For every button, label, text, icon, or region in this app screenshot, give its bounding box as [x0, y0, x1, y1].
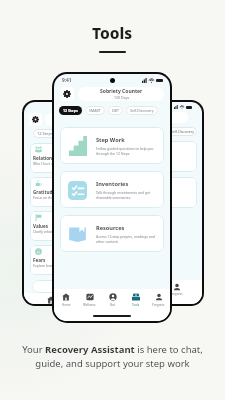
- button[interactable]: Resources: [60, 215, 164, 252]
- staticText: Sobriety Counter: [100, 88, 143, 95]
- staticText: Resources: [96, 224, 125, 232]
- button[interactable]: DBT: [108, 106, 123, 115]
- staticText: 120 Days: [114, 95, 130, 100]
- staticText: Access 12-step prayers, readings and: [96, 234, 155, 239]
- button[interactable]: Relationships: [30, 143, 76, 173]
- staticText: Explore fear t: [33, 263, 55, 268]
- staticText: Clarify what m: [33, 229, 56, 234]
- staticText: through the 12 Steps.: [96, 151, 131, 156]
- button[interactable]: Step Work: [60, 127, 164, 164]
- button[interactable]: Settings: [60, 87, 74, 101]
- staticText: 12 Steps: [63, 108, 78, 113]
- staticText: y cognitive: [154, 154, 173, 159]
- button[interactable]: [45, 113, 76, 126]
- button[interactable]: [150, 112, 188, 123]
- button[interactable]: Wellness: [78, 291, 101, 309]
- staticText: Your Recovery Assistant is here to chat,…: [14, 343, 211, 370]
- staticText: Bot: [110, 303, 115, 307]
- staticText: Self-Discovery: [171, 129, 194, 134]
- staticText: other content.: [96, 239, 119, 244]
- staticText: 9:41: [61, 105, 70, 111]
- staticText: Progress: [170, 292, 183, 296]
- staticText: DBT: [112, 108, 119, 113]
- staticText: Progress: [152, 303, 165, 307]
- staticText: Home: [62, 303, 71, 307]
- button[interactable]: 12 Steps: [33, 129, 57, 138]
- button[interactable]: Self-Discovery: [168, 127, 197, 136]
- staticText: Wellness: [83, 303, 96, 307]
- button[interactable]: Self-Discovery: [126, 106, 158, 115]
- button[interactable]: Inventories: [60, 171, 164, 208]
- staticText: 12 Steps: [37, 131, 53, 136]
- staticText: Inventories: [96, 180, 129, 188]
- button[interactable]: Home: [54, 291, 78, 309]
- button[interactable]: 12 Steps: [59, 106, 82, 115]
- button[interactable]: Tools: [124, 291, 147, 309]
- staticText: shareable summaries.: [96, 195, 132, 200]
- button[interactable]: Sobriety Counter: [78, 87, 164, 101]
- button[interactable]: Bot: [101, 291, 124, 309]
- staticText: Fears: [33, 257, 46, 263]
- staticText: Values: [33, 223, 49, 229]
- button[interactable]: y cognitive: [150, 141, 197, 172]
- staticText: Tools: [92, 22, 133, 43]
- staticText: Focus on the: [33, 195, 54, 200]
- staticText: Step Work: [96, 136, 125, 144]
- staticText: Tools: [132, 303, 140, 307]
- staticText: r therapy: [154, 190, 170, 195]
- button[interactable]: r therapy: [150, 177, 197, 208]
- staticText: Gratitude: [33, 189, 56, 195]
- button[interactable]: Values: [30, 211, 76, 241]
- button[interactable]: Progress: [170, 283, 183, 296]
- staticText: Who I hurt +: [33, 161, 53, 166]
- staticText: Relationships: [33, 155, 64, 161]
- staticText: 9:41: [62, 77, 72, 84]
- button[interactable]: Gratitude: [30, 177, 76, 207]
- button[interactable]: SMART: [85, 106, 105, 115]
- staticText: Self-Discovery: [130, 108, 154, 113]
- button[interactable]: Settings: [29, 113, 42, 126]
- staticText: SMART: [89, 108, 101, 113]
- staticText: My S: [61, 283, 73, 290]
- button[interactable]: My S: [32, 280, 76, 293]
- staticText: Talk through resentments and get: [96, 190, 151, 195]
- button[interactable]: Home: [46, 296, 55, 304]
- staticText: Follow guided questions to help you: [96, 146, 154, 151]
- button[interactable]: Progress: [147, 291, 170, 309]
- button[interactable]: Fears: [30, 245, 76, 275]
